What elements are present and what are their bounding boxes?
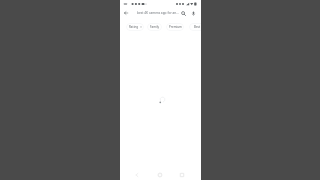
staticText: Best: [194, 25, 201, 29]
button[interactable]: Home: [155, 170, 165, 180]
button[interactable]: Best: [189, 23, 201, 31]
button[interactable]: Premium: [166, 23, 184, 31]
staticText: best 4K camera app for an…: [137, 11, 179, 15]
button[interactable]: Voice search: [188, 8, 198, 18]
staticText: Rating: [129, 25, 139, 29]
button[interactable]: Recent apps: [177, 170, 187, 180]
staticText: Family: [150, 25, 160, 29]
button[interactable]: Rating: [126, 23, 144, 31]
button[interactable]: Back: [121, 8, 131, 18]
button[interactable]: best 4K camera app for an…: [137, 8, 179, 18]
staticText: Premium: [169, 25, 182, 29]
button[interactable]: Family: [147, 23, 162, 31]
button[interactable]: Search: [178, 8, 188, 18]
